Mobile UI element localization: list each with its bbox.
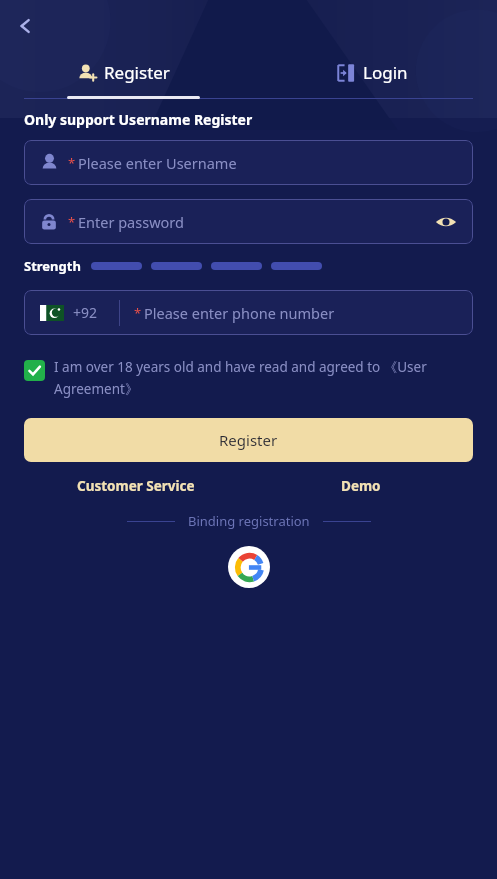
staticText: * (68, 213, 76, 231)
button[interactable]: Demo (248, 477, 473, 495)
button[interactable]: Customer Service (24, 477, 248, 495)
button[interactable]: Register (0, 48, 248, 96)
button[interactable]: Back (4, 4, 48, 48)
button[interactable]: Login (248, 48, 497, 96)
button[interactable]: +92 (24, 290, 119, 335)
button[interactable]: * (24, 140, 473, 185)
staticText: Register (219, 430, 278, 450)
staticText: * (68, 154, 76, 172)
staticText: Enter password (78, 212, 184, 232)
staticText: +92 (73, 303, 98, 322)
button[interactable]: Sign in with Google (228, 546, 270, 588)
staticText: I am over 18 years old and have read and… (54, 358, 473, 398)
staticText: Register (104, 61, 170, 84)
button[interactable]: Register (24, 418, 473, 462)
staticText: Please enter Username (78, 153, 237, 173)
staticText: Customer Service (77, 477, 195, 495)
button[interactable]: Show password (429, 205, 463, 239)
staticText: Please enter phone number (144, 303, 335, 323)
staticText: Login (363, 61, 408, 84)
staticText: Only support Username Register (24, 110, 253, 129)
staticText: Binding registration (188, 512, 310, 530)
staticText: * (134, 304, 142, 322)
staticText: Demo (341, 477, 381, 495)
button[interactable]: * (134, 290, 473, 335)
staticText: Strength (24, 257, 81, 275)
button[interactable]: * (24, 199, 473, 244)
button[interactable]: I am over 18 years old and have read and… (24, 358, 473, 398)
